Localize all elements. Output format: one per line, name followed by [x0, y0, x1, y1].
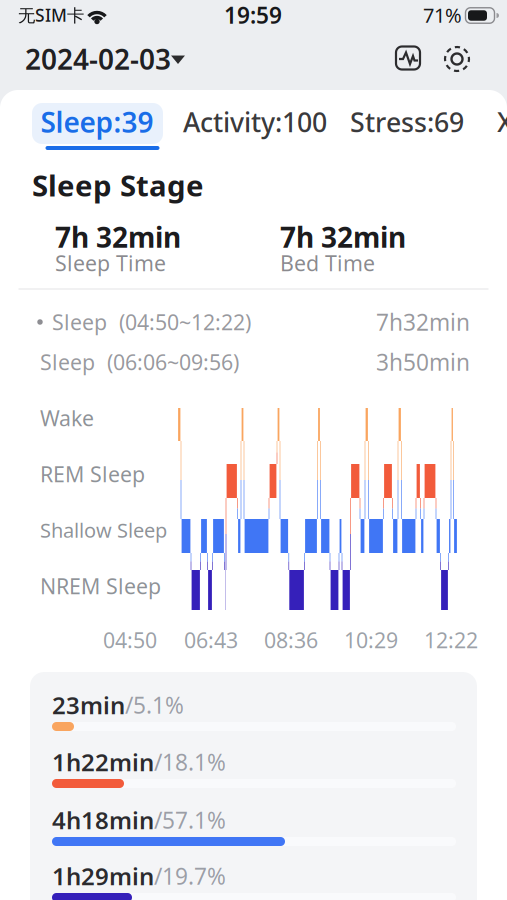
staticText: Sleep (06:06~09:56): [40, 348, 239, 376]
staticText: 19:59: [224, 0, 282, 30]
staticText: 06:43: [184, 626, 238, 654]
staticText: 12:22: [424, 626, 478, 654]
staticText: REM Sleep: [40, 460, 145, 488]
staticText: 23min: [52, 689, 125, 721]
staticText: 71%: [423, 2, 462, 28]
staticText: 7h 32min: [280, 218, 406, 256]
staticText: /18.1%: [154, 747, 226, 777]
staticText: 2024-02-03: [25, 40, 171, 78]
staticText: Sleep Stage: [32, 165, 204, 204]
staticText: Sleep (04:50~12:22): [52, 308, 251, 336]
staticText: Shallow Sleep: [40, 517, 167, 543]
staticText: 08:36: [264, 626, 318, 654]
staticText: 04:50: [103, 626, 157, 654]
staticText: NREM Sleep: [40, 572, 161, 600]
staticText: Stress:69: [350, 104, 464, 140]
staticText: Bed Time: [280, 249, 375, 277]
staticText: /19.7%: [154, 861, 226, 891]
staticText: 7h 32min: [55, 218, 181, 256]
staticText: /5.1%: [125, 690, 184, 720]
staticText: /57.1%: [154, 805, 226, 835]
staticText: 3h50min: [376, 347, 470, 377]
staticText: Activity:100: [183, 104, 327, 140]
staticText: 4h18min: [52, 804, 154, 836]
staticText: X: [497, 104, 507, 140]
staticText: Wake: [40, 404, 94, 432]
staticText: 7h32min: [376, 307, 470, 337]
staticText: 1h22min: [52, 746, 154, 778]
staticText: Sleep:39: [40, 103, 153, 141]
staticText: 无SIM卡: [18, 3, 84, 26]
staticText: 10:29: [344, 626, 398, 654]
staticText: 1h29min: [52, 860, 154, 892]
staticText: Sleep Time: [55, 249, 166, 277]
